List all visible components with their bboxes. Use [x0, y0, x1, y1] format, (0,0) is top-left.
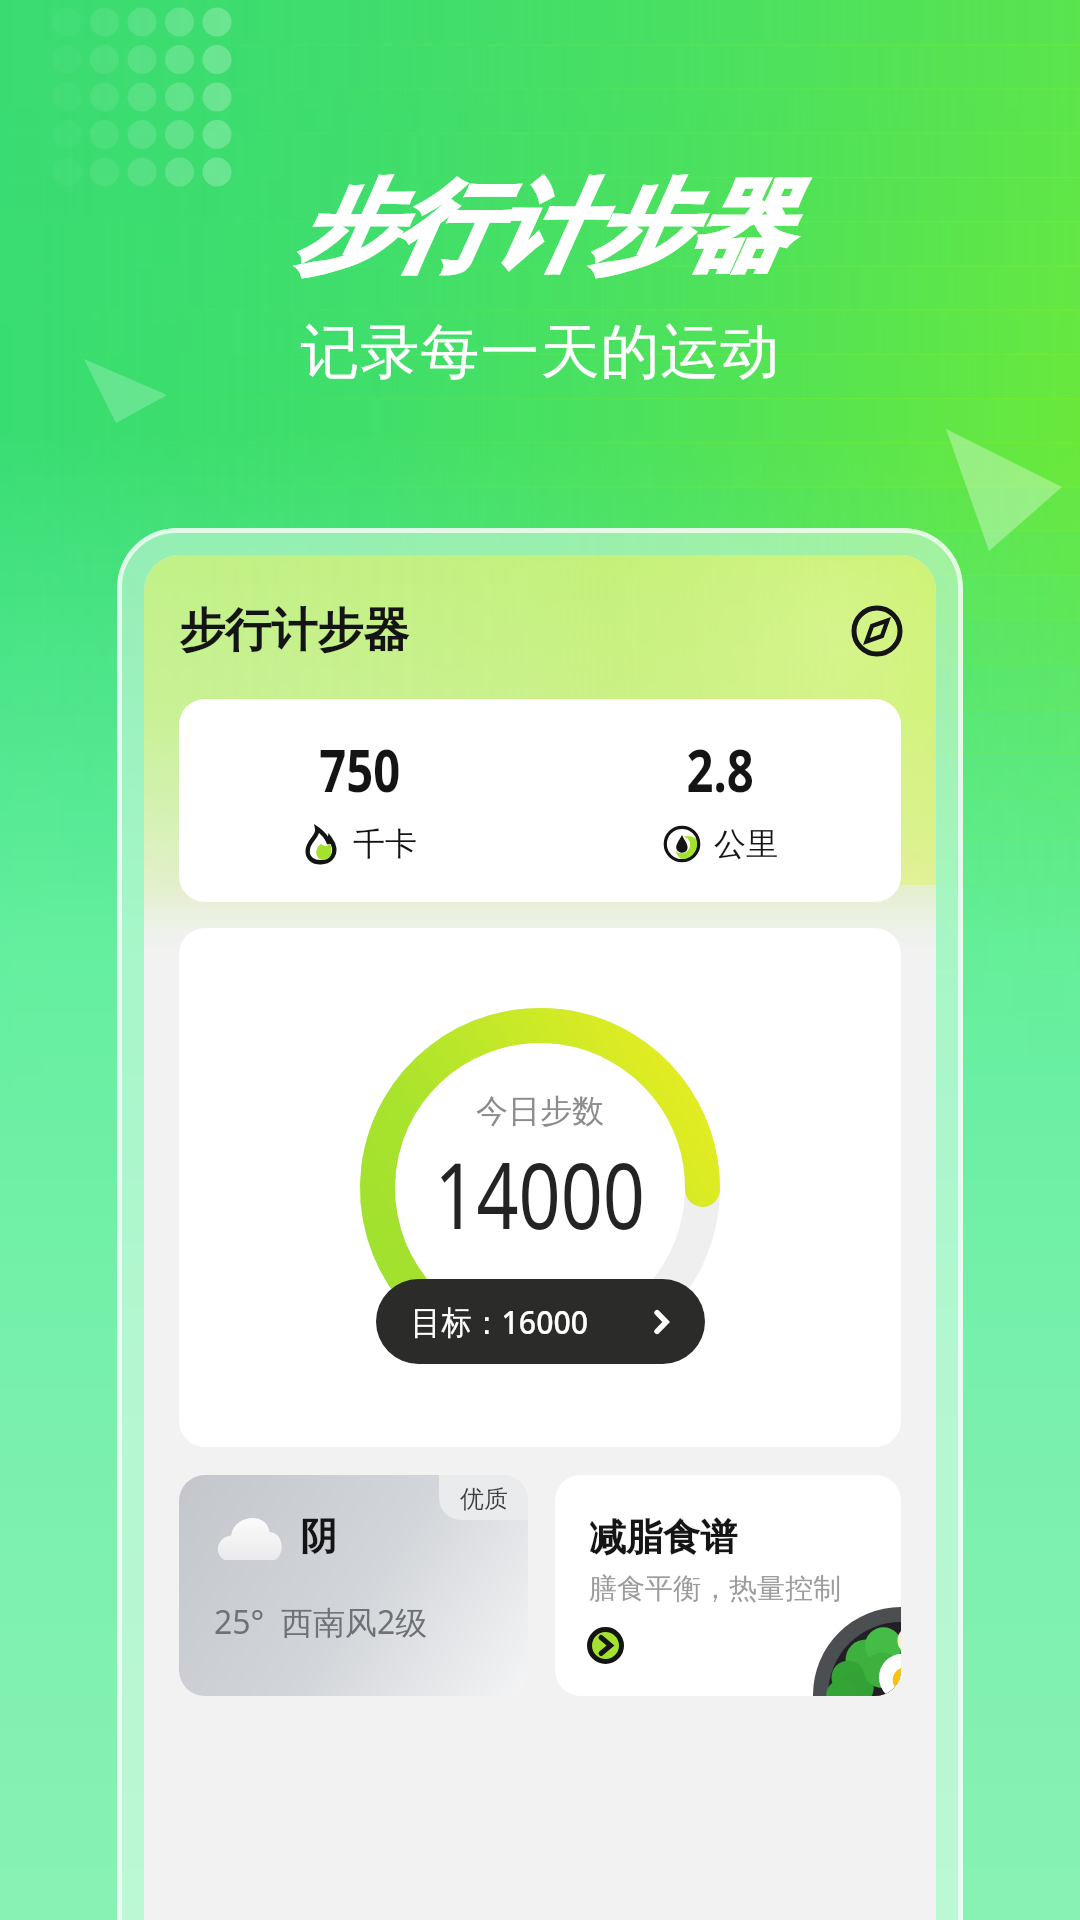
button[interactable]: 今日步数	[179, 928, 901, 1447]
button[interactable]: 优质	[179, 1475, 528, 1696]
staticText: 阴	[300, 1513, 337, 1560]
button[interactable]: Explore	[849, 603, 905, 659]
staticText: 优质	[460, 1484, 508, 1514]
button[interactable]: 减脂食谱	[555, 1475, 901, 1696]
staticText: 步行计步器	[179, 602, 409, 660]
button[interactable]: Open recipes	[587, 1627, 624, 1664]
button[interactable]: 目标：16000	[376, 1279, 705, 1364]
staticText: 千卡	[353, 824, 417, 864]
staticText: 公里	[714, 824, 778, 864]
staticText: 2.8	[686, 729, 754, 809]
staticText: 今日步数	[476, 1091, 604, 1131]
staticText: 25° 西南风2级	[214, 1600, 428, 1644]
staticText: 减脂食谱	[589, 1514, 737, 1561]
staticText: 膳食平衡，热量控制	[589, 1571, 841, 1606]
staticText: 750	[319, 729, 401, 809]
staticText: 14000	[434, 1131, 646, 1256]
staticText: 步行计步器	[295, 167, 785, 290]
staticText: 目标：16000	[411, 1299, 588, 1344]
staticText: 记录每一天的运动	[300, 315, 780, 389]
button[interactable]: 750	[179, 699, 901, 902]
